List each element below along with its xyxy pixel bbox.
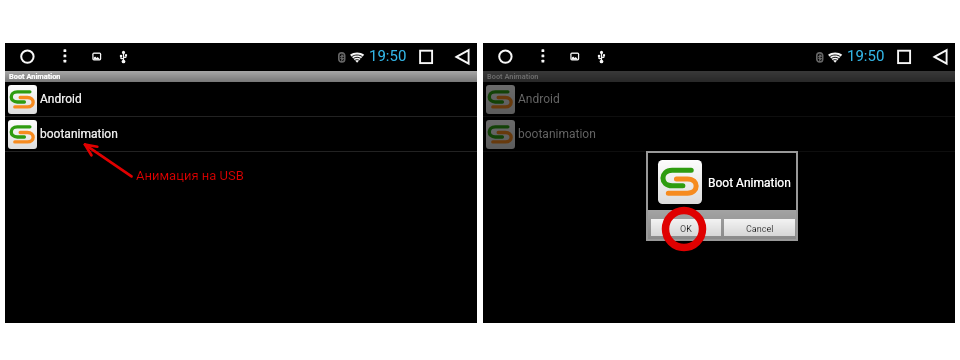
- button[interactable]: Cancel: [724, 219, 795, 236]
- button[interactable]: Android: [483, 82, 955, 116]
- staticText: Boot Animation: [9, 72, 61, 81]
- button[interactable]: Menu: [57, 47, 73, 66]
- staticText: bootanimation: [40, 127, 118, 141]
- button[interactable]: USB: [115, 47, 133, 66]
- button[interactable]: Menu: [535, 47, 551, 66]
- button[interactable]: Android: [5, 82, 477, 116]
- button[interactable]: Screenshot: [565, 47, 585, 65]
- button[interactable]: OK: [651, 219, 721, 236]
- staticText: 19:50: [847, 47, 885, 65]
- staticText: Android: [40, 92, 82, 106]
- button[interactable]: Screenshot: [87, 47, 107, 65]
- button[interactable]: Back: [454, 48, 472, 66]
- staticText: 19:50: [369, 47, 407, 65]
- staticText: Boot Animation: [487, 72, 539, 81]
- button[interactable]: Back: [932, 48, 950, 66]
- button[interactable]: bootanimation: [483, 117, 955, 151]
- staticText: Android: [518, 92, 560, 106]
- button[interactable]: Recents: [417, 48, 434, 65]
- staticText: OK: [680, 224, 692, 235]
- staticText: Анимация на USB: [136, 168, 244, 183]
- other: Bluetooth: [338, 52, 346, 63]
- other: Bluetooth: [816, 52, 824, 63]
- button[interactable]: USB: [593, 47, 611, 66]
- button[interactable]: bootanimation: [5, 117, 477, 151]
- button[interactable]: Recents: [895, 48, 912, 65]
- other: Wi-Fi: [350, 52, 366, 64]
- button[interactable]: Home: [497, 48, 514, 65]
- other: Wi-Fi: [828, 52, 844, 64]
- staticText: Cancel: [746, 224, 774, 235]
- staticText: Boot Animation: [708, 176, 791, 190]
- staticText: bootanimation: [518, 127, 596, 141]
- button[interactable]: Home: [19, 48, 36, 65]
